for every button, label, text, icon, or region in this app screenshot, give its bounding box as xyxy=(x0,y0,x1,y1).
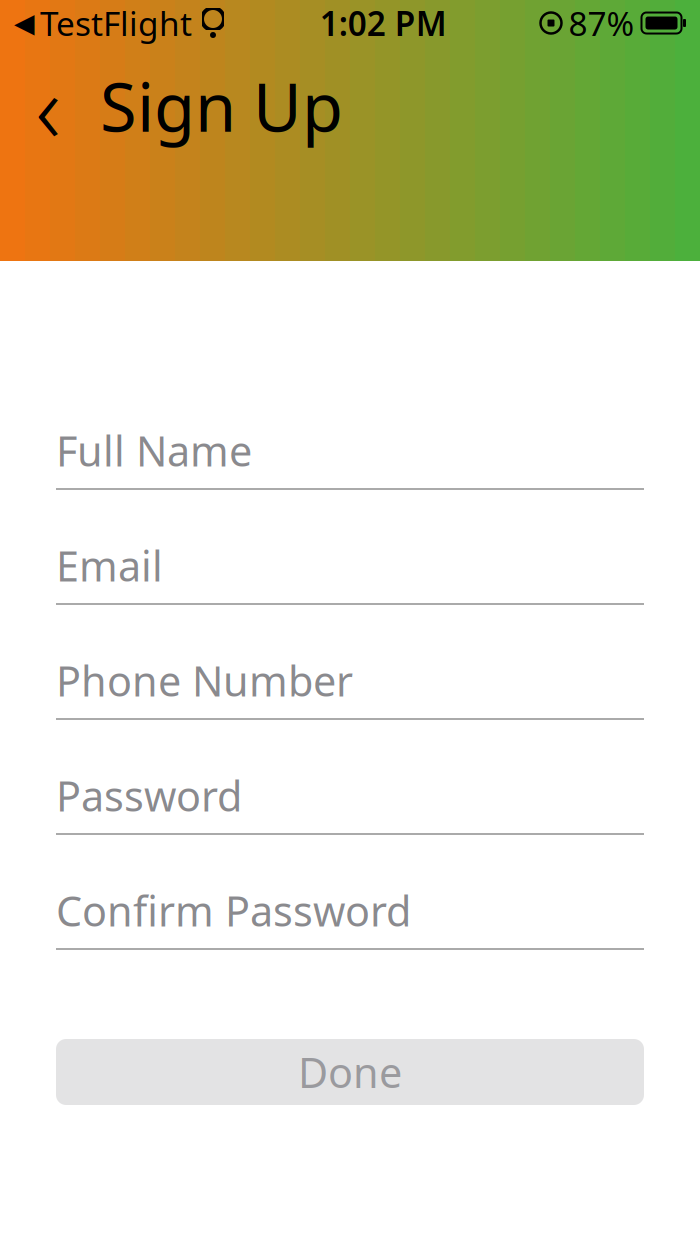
staticText: Full Name xyxy=(56,423,252,478)
staticText: Confirm Password xyxy=(56,883,411,938)
button[interactable]: Done xyxy=(56,1039,644,1105)
staticText: Password xyxy=(56,768,242,823)
button[interactable]: Phone Number xyxy=(56,643,644,718)
staticText: Done xyxy=(298,1045,402,1099)
staticText: Sign Up xyxy=(100,62,343,150)
button[interactable]: Full Name xyxy=(56,413,644,488)
staticText: Phone Number xyxy=(56,653,353,708)
staticText: ◀ xyxy=(14,8,35,38)
button[interactable]: Password xyxy=(56,758,644,833)
staticText: 1:02 PM xyxy=(320,1,447,45)
button[interactable]: Email xyxy=(56,528,644,603)
button[interactable]: Back xyxy=(18,61,78,151)
button[interactable]: Confirm Password xyxy=(56,873,644,948)
staticText: ‹ xyxy=(35,42,60,170)
staticText: 87% xyxy=(568,1,634,45)
staticText: Email xyxy=(56,538,163,593)
staticText: TestFlight xyxy=(40,1,192,45)
